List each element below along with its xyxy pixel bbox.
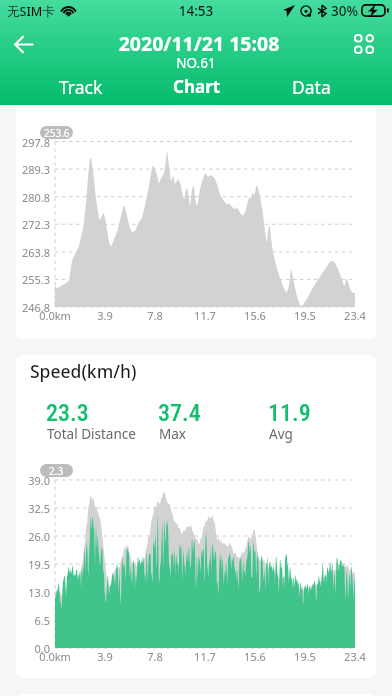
staticText: Total Distance xyxy=(47,425,136,443)
staticText: 15.6 xyxy=(225,308,285,323)
button[interactable]: Chart xyxy=(139,73,254,108)
staticText: 6.5 xyxy=(16,613,50,628)
staticText: 7.8 xyxy=(125,649,185,664)
staticText: 3.9 xyxy=(75,649,135,664)
staticText: 0.0km xyxy=(25,649,85,664)
staticText: Max xyxy=(159,425,186,443)
staticText: 0.0km xyxy=(25,308,85,323)
staticText: 263.8 xyxy=(16,245,50,260)
staticText: 289.3 xyxy=(16,162,50,177)
staticText: 23.4 xyxy=(325,649,376,664)
staticText: 11.7 xyxy=(175,649,235,664)
staticText: 19.5 xyxy=(16,557,50,572)
staticText: 2020/11/21 15:08 xyxy=(3,30,392,57)
staticText: Chart xyxy=(173,75,221,98)
staticText: 272.3 xyxy=(16,217,50,232)
staticText: 253.6 xyxy=(44,126,70,139)
staticText: NO.61 xyxy=(0,54,392,72)
button[interactable]: Menu xyxy=(342,22,386,66)
staticText: 297.8 xyxy=(16,135,50,150)
staticText: 23.4 xyxy=(325,308,376,323)
staticText: 39.0 xyxy=(16,473,50,488)
staticText: Avg xyxy=(269,425,293,443)
staticText: 2.3 xyxy=(49,464,64,477)
staticText: Data xyxy=(292,75,331,99)
staticText: 23.3 xyxy=(46,399,89,427)
staticText: 11.9 xyxy=(268,399,311,427)
staticText: 280.8 xyxy=(16,190,50,205)
staticText: 3.9 xyxy=(75,308,135,323)
staticText: 15.6 xyxy=(225,649,285,664)
staticText: 11.7 xyxy=(175,308,235,323)
staticText: 0.0 xyxy=(16,641,50,656)
staticText: 14:53 xyxy=(0,2,392,20)
staticText: 37.4 xyxy=(158,399,201,427)
staticText: 7.8 xyxy=(125,308,185,323)
staticText: 32.5 xyxy=(16,501,50,516)
staticText: 19.5 xyxy=(275,649,335,664)
button[interactable]: Track xyxy=(23,73,139,108)
staticText: 19.5 xyxy=(275,308,335,323)
staticText: 255.3 xyxy=(16,272,50,287)
staticText: 无SIM卡 xyxy=(7,3,55,20)
staticText: 30% xyxy=(331,2,358,20)
staticText: 26.0 xyxy=(16,529,50,544)
staticText: Speed(km/h) xyxy=(30,359,137,383)
staticText: 13.0 xyxy=(16,585,50,600)
staticText: Track xyxy=(59,75,103,99)
button[interactable]: Back xyxy=(1,22,45,66)
staticText: 246.8 xyxy=(16,300,50,315)
button[interactable]: Data xyxy=(254,73,369,108)
